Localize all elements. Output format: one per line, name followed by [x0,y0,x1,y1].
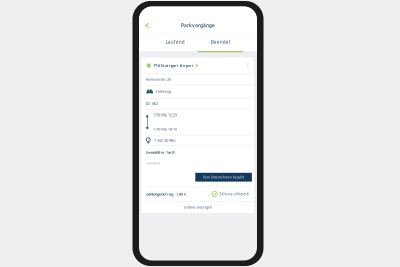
staticText: Laufend [166,39,185,45]
staticText: 17/01/06 14:10 [153,127,177,132]
staticText: P14 Stuttgart Airport [154,63,194,68]
button[interactable]: Vom Unternehmen bezahlt [195,173,252,182]
button[interactable]: P14 Stuttgart Airport [141,57,254,74]
staticText: Gewählter Tarif: [146,150,175,155]
staticText: Vom Unternehmen bezahlt [203,175,244,179]
staticText: Kennzeichn: 20 [146,77,171,82]
staticText: Beendet [211,39,231,45]
staticText: Zahlung erfolgreich [219,192,249,196]
staticText: Fahrzeug [156,89,171,94]
staticText: Details anzeigen [184,205,212,210]
button[interactable]: Laufend [152,36,198,47]
button[interactable]: Beendet [198,36,243,47]
staticText: ID: #62 [146,101,158,106]
staticText: Standard [146,161,160,166]
staticText: 1 Std. 40 Min. [154,138,176,143]
staticText: Parkvorgänge [181,22,215,29]
staticText: 17/01/06 12:29 [153,113,177,117]
button[interactable]: Back [139,16,156,34]
button[interactable]: Details anzeigen [141,202,254,213]
staticText: Zahlungsbetrag : 7,80 € [146,191,186,197]
